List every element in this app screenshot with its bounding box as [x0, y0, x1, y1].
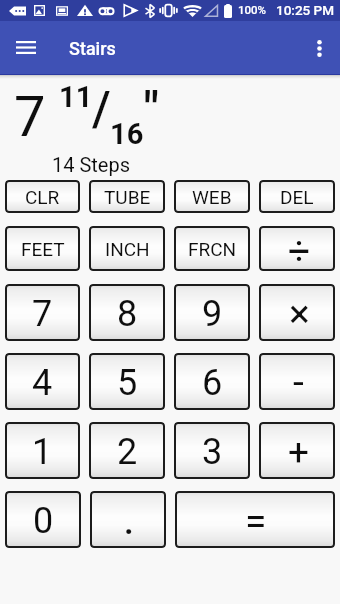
staticText: 5 — [117, 362, 138, 404]
button[interactable]: × — [259, 284, 335, 341]
staticText: 2 — [117, 431, 138, 473]
staticText: - — [293, 359, 304, 405]
button[interactable]: 5 — [89, 353, 165, 410]
staticText: 11 — [59, 80, 93, 114]
button[interactable]: 1 — [5, 422, 80, 479]
button[interactable]: WEB — [174, 180, 250, 213]
staticText: 9 — [202, 293, 223, 335]
button[interactable]: 3 — [174, 422, 250, 479]
button[interactable]: . — [90, 491, 166, 548]
staticText: TUBE — [104, 186, 151, 208]
button[interactable]: DEL — [259, 180, 335, 213]
staticText: 4 — [32, 362, 53, 404]
staticText: 14 Steps — [52, 153, 131, 176]
staticText: 3 — [202, 431, 223, 473]
staticText: CLR — [25, 186, 60, 208]
button[interactable]: 6 — [174, 353, 250, 410]
button[interactable]: TUBE — [89, 180, 165, 213]
button[interactable]: 0 — [5, 491, 81, 548]
staticText: / — [92, 80, 111, 136]
staticText: " — [144, 82, 159, 136]
button[interactable]: ÷ — [259, 226, 335, 271]
staticText: 10:25 PM — [276, 2, 335, 18]
button[interactable]: 7 — [5, 284, 80, 341]
staticText: = — [245, 499, 267, 545]
button[interactable]: INCH — [89, 226, 165, 271]
button[interactable]: + — [259, 422, 335, 479]
button[interactable]: 9 — [174, 284, 250, 341]
button[interactable]: CLR — [5, 180, 80, 213]
staticText: 6 — [202, 362, 223, 404]
staticText: 0 — [33, 500, 54, 542]
staticText: 100% — [238, 3, 267, 16]
staticText: DEL — [280, 186, 314, 208]
button[interactable]: 2 — [89, 422, 165, 479]
staticText: ÷ — [288, 228, 311, 271]
staticText: INCH — [105, 238, 150, 260]
button[interactable]: 8 — [89, 284, 165, 341]
button[interactable]: - — [259, 353, 335, 410]
staticText: 16 — [110, 117, 144, 151]
staticText: × — [289, 291, 310, 337]
staticText: FRCN — [188, 238, 237, 260]
button[interactable]: 4 — [5, 353, 80, 410]
staticText: Stairs — [69, 38, 116, 59]
staticText: . — [123, 492, 135, 545]
button[interactable]: FRCN — [174, 226, 250, 271]
staticText: 7 — [14, 84, 46, 150]
staticText: + — [288, 431, 309, 474]
staticText: 8 — [117, 293, 138, 335]
button[interactable]: Open navigation menu — [0, 21, 52, 73]
button[interactable]: = — [175, 491, 335, 548]
staticText: FEET — [21, 238, 65, 260]
staticText: 7 — [32, 293, 53, 335]
staticText: WEB — [192, 186, 232, 208]
staticText: 1 — [32, 431, 53, 473]
button[interactable]: More options — [298, 27, 340, 69]
button[interactable]: FEET — [5, 226, 80, 271]
